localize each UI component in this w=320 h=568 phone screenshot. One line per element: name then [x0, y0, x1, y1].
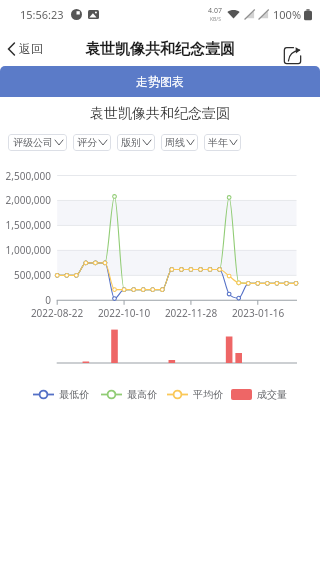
staticText: 最低价 [59, 388, 89, 401]
button[interactable]: 成交量 [231, 388, 287, 401]
button[interactable]: 半年 [204, 134, 241, 151]
button[interactable]: 最高价 [101, 388, 157, 401]
staticText: 平均价 [193, 388, 223, 401]
staticText: KB/S [210, 16, 221, 23]
staticText: 1,000,000 [0, 243, 51, 257]
button[interactable]: 评级公司 [8, 134, 67, 151]
staticText: 2022-08-22 [26, 306, 88, 320]
staticText: 周线 [165, 136, 185, 149]
button[interactable]: 评分 [73, 134, 111, 151]
staticText: 评分 [77, 136, 97, 149]
button[interactable]: 分享 [282, 45, 303, 66]
button[interactable]: 平均价 [167, 388, 223, 401]
staticText: 成交量 [257, 388, 287, 401]
staticText: 评级公司 [13, 136, 53, 149]
button[interactable]: 走势图表 [0, 66, 320, 97]
staticText: 半年 [208, 136, 228, 149]
staticText: 2022-11-28 [160, 306, 222, 320]
staticText: 2022-10-10 [93, 306, 155, 320]
button[interactable]: 周线 [161, 134, 198, 151]
staticText: 返回 [19, 41, 43, 56]
staticText: 版别 [121, 136, 141, 149]
staticText: 100% [273, 7, 302, 22]
staticText: 500,000 [0, 268, 51, 282]
button[interactable]: 版别 [117, 134, 155, 151]
button[interactable]: 最低价 [33, 388, 89, 401]
staticText: 袁世凯像共和纪念壹圆 [0, 40, 320, 59]
staticText: 1,500,000 [0, 218, 51, 232]
staticText: 2,500,000 [0, 169, 51, 183]
staticText: 袁世凯像共和纪念壹圆 [0, 105, 320, 123]
staticText: 0 [0, 293, 51, 307]
staticText: 2023-01-16 [227, 306, 289, 320]
staticText: 2,000,000 [0, 193, 51, 207]
staticText: 15:56:23 [20, 7, 64, 22]
staticText: 4.07 [208, 6, 222, 16]
staticText: 走势图表 [136, 74, 184, 89]
button[interactable]: 返回 [4, 38, 47, 59]
staticText: 最高价 [127, 388, 157, 401]
